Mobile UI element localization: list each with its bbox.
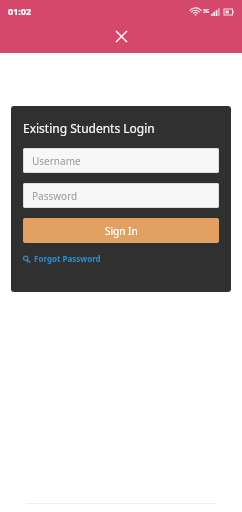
button[interactable]: Password: [23, 183, 219, 208]
staticText: Password: [32, 189, 78, 203]
button[interactable]: Close: [109, 24, 133, 48]
staticText: Sign In: [105, 224, 138, 238]
staticText: Existing Students Login: [23, 120, 155, 136]
button[interactable]: Username: [23, 148, 219, 173]
button[interactable]: Forgot Password: [23, 251, 101, 266]
button[interactable]: Sign In: [23, 218, 219, 243]
staticText: Forgot Password: [34, 253, 101, 264]
staticText: 01:02: [8, 5, 32, 17]
staticText: 3G: [203, 8, 210, 15]
staticText: Username: [32, 154, 81, 168]
